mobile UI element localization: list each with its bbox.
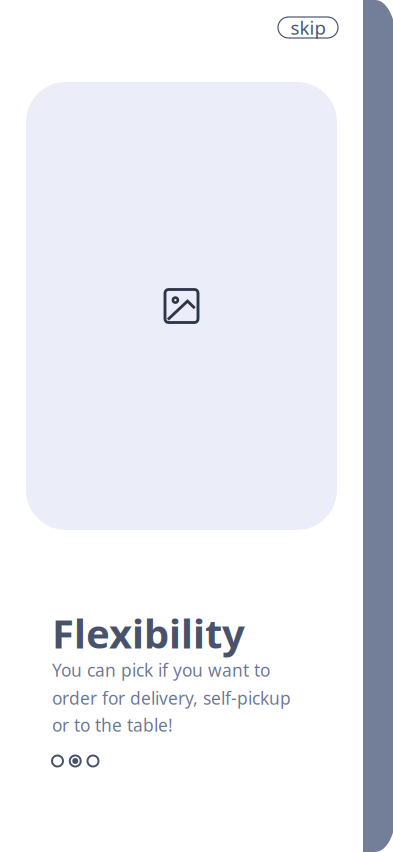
button[interactable]: Page 1	[51, 754, 64, 767]
button[interactable]: skip	[278, 17, 338, 38]
staticText: You can pick if you want to	[52, 658, 270, 681]
staticText: or to the table!	[52, 713, 173, 736]
button[interactable]: Page 3	[86, 754, 99, 767]
staticText: Flexibility	[52, 606, 245, 659]
button[interactable]: Page 2, current page	[69, 754, 82, 767]
staticText: skip	[290, 15, 325, 40]
staticText: order for delivery, self-pickup	[52, 686, 291, 709]
